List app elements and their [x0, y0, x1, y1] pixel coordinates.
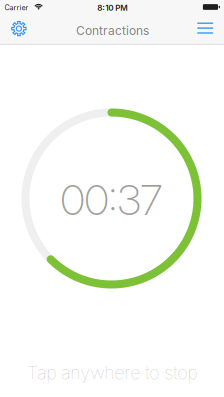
- button[interactable]: Menu: [188, 13, 222, 43]
- button[interactable]: 00:37: [0, 0, 224, 397]
- staticText: Contractions: [76, 23, 149, 38]
- staticText: 8:10 PM: [97, 3, 128, 13]
- staticText: Carrier: [5, 3, 29, 12]
- staticText: Tap anywhere to stop: [27, 362, 197, 383]
- staticText: 00:37: [60, 174, 162, 225]
- button[interactable]: Settings: [3, 12, 35, 45]
